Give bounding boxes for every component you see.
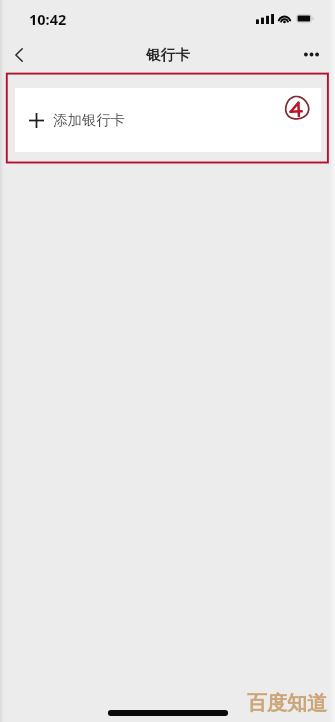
staticText: 添加银行卡 — [53, 111, 125, 129]
staticText: 百度知道 — [247, 691, 327, 716]
staticText: 银行卡 — [146, 46, 190, 64]
button[interactable]: More options — [294, 37, 328, 71]
button[interactable]: Back — [2, 38, 36, 72]
button[interactable]: 添加银行卡 — [15, 88, 321, 152]
staticText: 10:42 — [29, 9, 67, 29]
